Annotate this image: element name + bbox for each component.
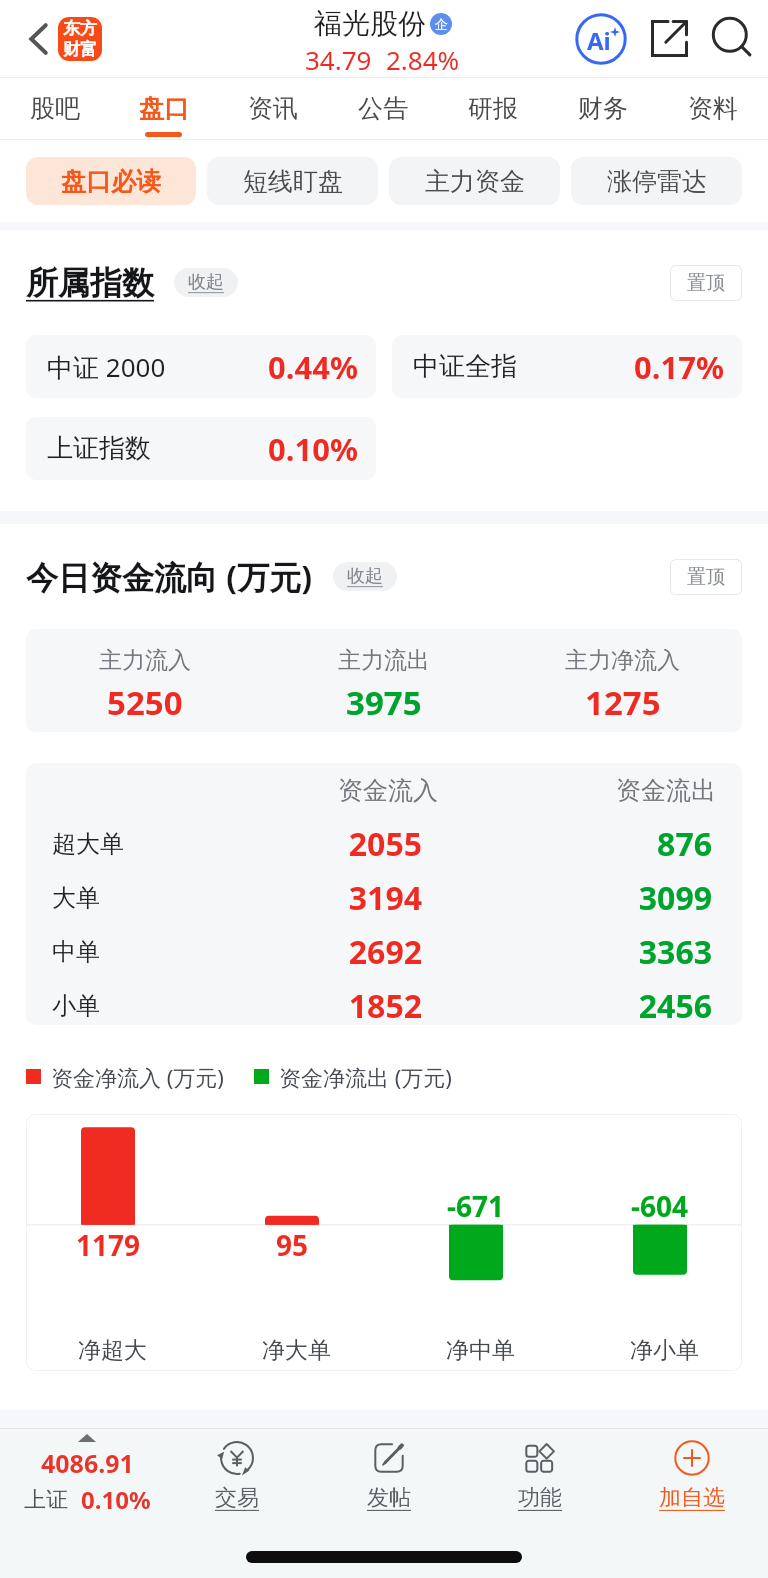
staticText: 置顶	[687, 271, 725, 295]
staticText: 5250	[107, 680, 183, 725]
button[interactable]: 盘口	[109, 78, 218, 139]
staticText: 置顶	[687, 565, 725, 589]
button[interactable]: 交易	[182, 1439, 292, 1512]
staticText: 企	[435, 16, 448, 32]
button[interactable]: 4086.91	[4, 1434, 170, 1524]
button[interactable]: 功能	[485, 1439, 595, 1512]
staticText: 公告	[358, 93, 408, 124]
staticText: 净超大	[78, 1336, 147, 1365]
staticText: 短线盯盘	[243, 166, 343, 197]
staticText: 资金净流入 (万元)	[51, 1062, 224, 1090]
button[interactable]: 公告	[328, 78, 438, 139]
staticText: 主力资金	[425, 166, 525, 197]
button[interactable]: 收起	[174, 268, 238, 297]
staticText: 2456	[422, 984, 712, 1025]
staticText: 净小单	[630, 1336, 699, 1365]
button[interactable]: Share	[638, 0, 700, 77]
button[interactable]: 财务	[548, 78, 658, 139]
staticText: 0.10%	[81, 1483, 151, 1516]
staticText: 3194	[202, 876, 422, 920]
staticText: 1852	[202, 984, 422, 1025]
staticText: 0.10%	[268, 428, 358, 470]
staticText: 资料	[688, 93, 738, 124]
staticText: 876	[422, 822, 712, 866]
button[interactable]: 加自选	[637, 1439, 747, 1512]
staticText: 净中单	[446, 1336, 515, 1365]
button[interactable]: 发帖	[334, 1439, 444, 1512]
button[interactable]: 置顶	[670, 265, 742, 301]
button[interactable]: 股吧	[0, 78, 109, 139]
staticText: 涨停雷达	[607, 166, 707, 197]
staticText: Ai	[587, 24, 611, 57]
staticText: 盘口必读	[61, 166, 161, 197]
staticText: 福光股份	[314, 6, 426, 41]
staticText: 小单	[52, 991, 202, 1021]
staticText: 2692	[202, 930, 422, 974]
staticText: 交易	[215, 1484, 259, 1512]
staticText: 主力流入	[99, 646, 191, 675]
staticText: 2.84%	[386, 42, 460, 77]
staticText: 3975	[346, 680, 422, 725]
staticText: 东方	[63, 18, 97, 39]
staticText: 3099	[422, 876, 712, 920]
staticText: 今日资金流向 (万元)	[26, 555, 313, 599]
staticText: 盘口	[139, 93, 189, 124]
button[interactable]: 收起	[333, 562, 397, 591]
staticText: 收起	[347, 565, 383, 588]
button[interactable]: 上证指数	[26, 417, 376, 480]
staticText: 4086.91	[41, 1446, 134, 1480]
staticText: 资金流出	[438, 775, 716, 806]
staticText: 财务	[578, 93, 628, 124]
staticText: 功能	[518, 1484, 562, 1512]
staticText: 95	[276, 1226, 309, 1264]
staticText: 净大单	[262, 1336, 331, 1365]
button[interactable]: 主力资金	[389, 157, 560, 205]
button[interactable]: East Money logo	[58, 17, 102, 61]
button[interactable]: AI assistant	[564, 0, 638, 77]
staticText: 股吧	[30, 93, 80, 124]
button[interactable]: 置顶	[670, 559, 742, 595]
staticText: 收起	[188, 271, 224, 294]
staticText: 上证指数	[47, 432, 151, 465]
button[interactable]: 中证 2000	[26, 335, 376, 398]
staticText: 资讯	[248, 93, 298, 124]
staticText: 0.44%	[268, 346, 358, 388]
staticText: 2055	[202, 822, 422, 866]
button[interactable]: 资讯	[218, 78, 328, 139]
staticText: 上证	[24, 1486, 68, 1514]
staticText: 所属指数	[26, 263, 154, 303]
staticText: 财富	[63, 39, 97, 60]
staticText: 中单	[52, 937, 202, 967]
staticText: 中证全指	[413, 350, 517, 383]
button[interactable]: 盘口必读	[26, 157, 196, 205]
button[interactable]: 短线盯盘	[207, 157, 378, 205]
staticText: 资金流入	[52, 775, 438, 806]
button[interactable]: 涨停雷达	[571, 157, 742, 205]
button[interactable]: 中证全指	[392, 335, 742, 398]
staticText: 超大单	[52, 829, 202, 859]
button[interactable]: 资料	[658, 78, 768, 139]
staticText: 3363	[422, 930, 712, 974]
staticText: 研报	[468, 93, 518, 124]
staticText: 主力流出	[338, 646, 430, 675]
staticText: 34.79	[305, 42, 372, 77]
staticText: 发帖	[367, 1484, 411, 1512]
staticText: -604	[631, 1187, 689, 1225]
staticText: -671	[447, 1187, 505, 1225]
staticText: 主力净流入	[565, 646, 680, 675]
staticText: 加自选	[659, 1484, 725, 1512]
staticText: 0.17%	[634, 346, 724, 388]
button[interactable]: 研报	[438, 78, 548, 139]
staticText: 中证 2000	[47, 349, 166, 385]
staticText: 大单	[52, 883, 202, 913]
staticText: 资金净流出 (万元)	[279, 1062, 452, 1090]
button[interactable]: Search	[700, 0, 768, 77]
button[interactable]: Back	[0, 0, 58, 77]
staticText: 1275	[585, 680, 661, 725]
staticText: 1179	[76, 1226, 141, 1264]
